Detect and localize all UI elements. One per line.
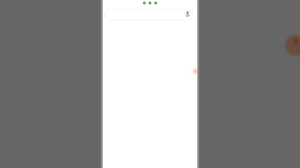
button[interactable] (104, 9, 192, 20)
